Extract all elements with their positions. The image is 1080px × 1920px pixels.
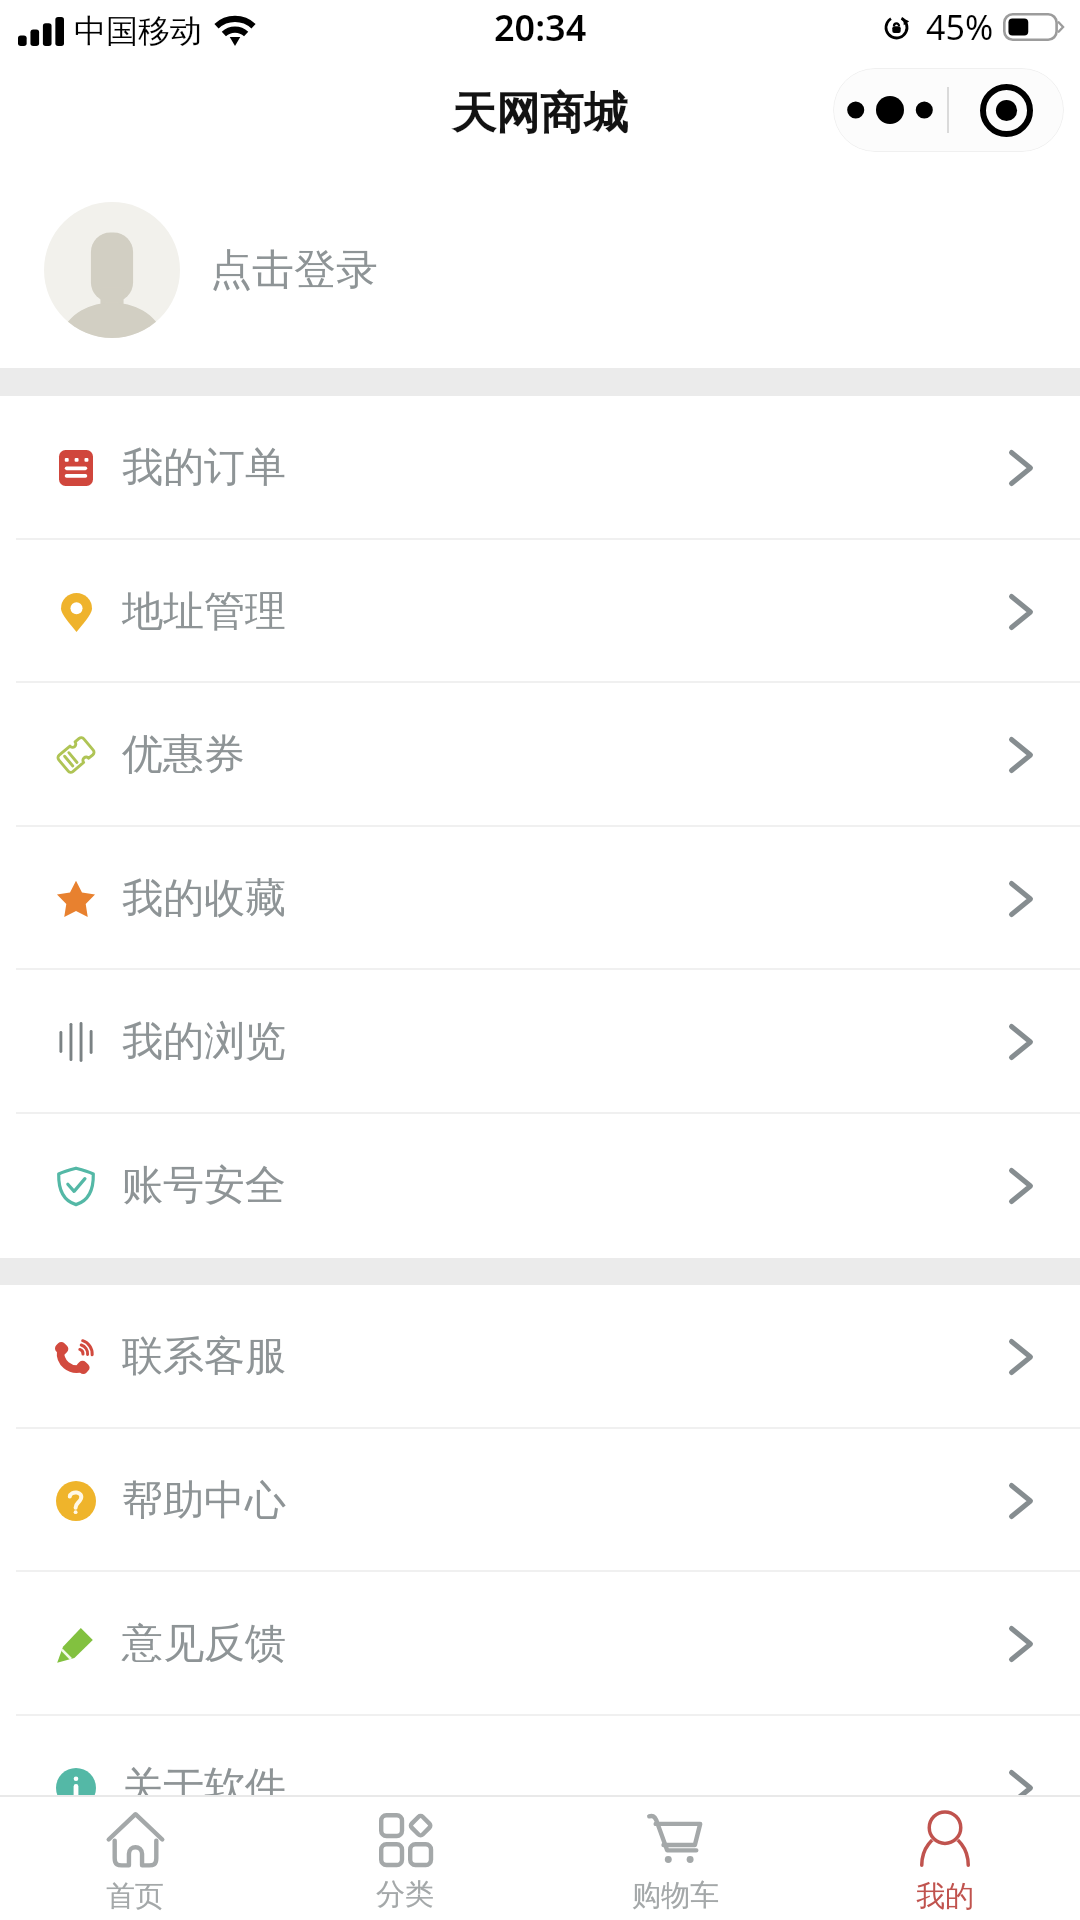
button[interactable]: 我的 <box>810 1797 1080 1920</box>
staticText: 联系客服 <box>122 1331 286 1383</box>
staticText: 账号安全 <box>122 1160 286 1212</box>
button[interactable]: 账号安全 <box>0 1114 1080 1258</box>
staticText: 45% <box>926 4 994 50</box>
button[interactable]: More <box>833 96 947 124</box>
button[interactable]: 我的浏览 <box>0 970 1080 1114</box>
button[interactable]: 我的收藏 <box>0 827 1080 970</box>
button[interactable]: 购物车 <box>540 1797 810 1920</box>
button[interactable]: 首页 <box>0 1797 270 1920</box>
staticText: 我的订单 <box>122 442 286 494</box>
button[interactable]: 地址管理 <box>0 540 1080 683</box>
staticText: 点击登录 <box>210 244 378 297</box>
button[interactable]: 分类 <box>270 1797 540 1920</box>
button[interactable]: 意见反馈 <box>0 1572 1080 1716</box>
staticText: 首页 <box>106 1878 164 1915</box>
button[interactable]: 帮助中心 <box>0 1429 1080 1572</box>
staticText: 帮助中心 <box>122 1475 286 1527</box>
staticText: 地址管理 <box>122 586 286 638</box>
staticText: 分类 <box>376 1876 434 1913</box>
staticText: 优惠券 <box>122 729 245 781</box>
staticText: 20:34 <box>494 3 587 52</box>
button[interactable]: Close mini program <box>949 84 1064 137</box>
staticText: 天网商城 <box>452 86 628 141</box>
staticText: 我的收藏 <box>122 873 286 925</box>
staticText: 购物车 <box>632 1877 719 1914</box>
button[interactable]: 联系客服 <box>0 1285 1080 1429</box>
staticText: 关于软件 <box>122 1762 286 1814</box>
button[interactable]: 关于软件 <box>0 1716 1080 1860</box>
staticText: 我的浏览 <box>122 1016 286 1068</box>
button[interactable]: 优惠券 <box>0 683 1080 827</box>
staticText: 中国移动 <box>74 11 202 51</box>
staticText: 意见反馈 <box>122 1618 286 1670</box>
button[interactable]: 点击登录 <box>0 172 1080 368</box>
staticText: 我的 <box>916 1878 974 1915</box>
button[interactable]: 我的订单 <box>0 396 1080 540</box>
